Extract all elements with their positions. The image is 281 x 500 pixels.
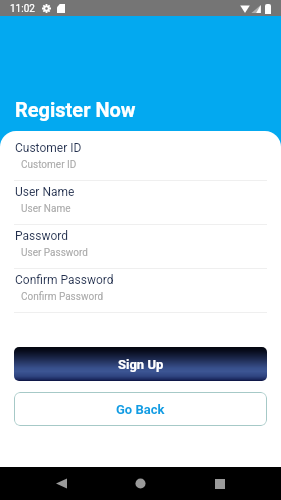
button[interactable]: Recent apps — [202, 467, 237, 500]
staticText: User Name — [21, 203, 71, 215]
button[interactable]: Password — [0, 225, 281, 269]
staticText: Go Back — [116, 402, 165, 417]
button[interactable]: Sign Up — [14, 347, 267, 381]
staticText: User Password — [21, 247, 88, 259]
button[interactable]: Confirm Password — [0, 269, 281, 313]
button[interactable]: Go Back — [14, 392, 267, 426]
staticText: Customer ID — [15, 141, 82, 155]
staticText: Register Now — [15, 98, 136, 121]
staticText: Password — [15, 229, 69, 243]
button[interactable]: Home — [123, 467, 158, 500]
staticText: Sign Up — [118, 357, 164, 372]
staticText: Confirm Password — [21, 291, 104, 303]
staticText: Customer ID — [21, 159, 77, 171]
staticText: User Name — [15, 185, 75, 199]
staticText: 11:02 — [10, 3, 35, 15]
button[interactable]: Back — [44, 467, 79, 500]
staticText: Confirm Password — [15, 273, 114, 287]
button[interactable]: User Name — [0, 181, 281, 225]
button[interactable]: Customer ID — [0, 137, 281, 181]
